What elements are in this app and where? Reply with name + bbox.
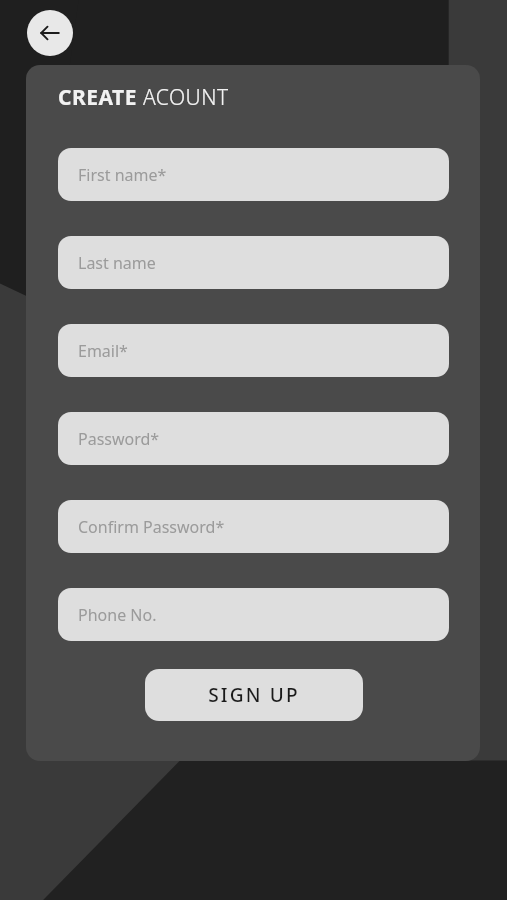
button[interactable]: Last name bbox=[58, 236, 449, 289]
button[interactable]: Confirm Password* bbox=[58, 500, 449, 553]
staticText: First name* bbox=[78, 164, 167, 186]
button[interactable]: SIGN UP bbox=[145, 669, 363, 721]
button[interactable]: Back bbox=[27, 10, 73, 56]
button[interactable]: Phone No. bbox=[58, 588, 449, 641]
staticText: CREATE bbox=[58, 83, 143, 112]
button[interactable]: First name* bbox=[58, 148, 449, 201]
staticText: Confirm Password* bbox=[78, 516, 225, 538]
staticText: Email* bbox=[78, 340, 128, 362]
button[interactable]: Email* bbox=[58, 324, 449, 377]
button[interactable]: Password* bbox=[58, 412, 449, 465]
staticText: Password* bbox=[78, 428, 160, 450]
staticText: SIGN UP bbox=[208, 682, 300, 708]
staticText: ACOUNT bbox=[143, 83, 229, 112]
staticText: Last name bbox=[78, 252, 156, 274]
staticText: Phone No. bbox=[78, 604, 157, 626]
